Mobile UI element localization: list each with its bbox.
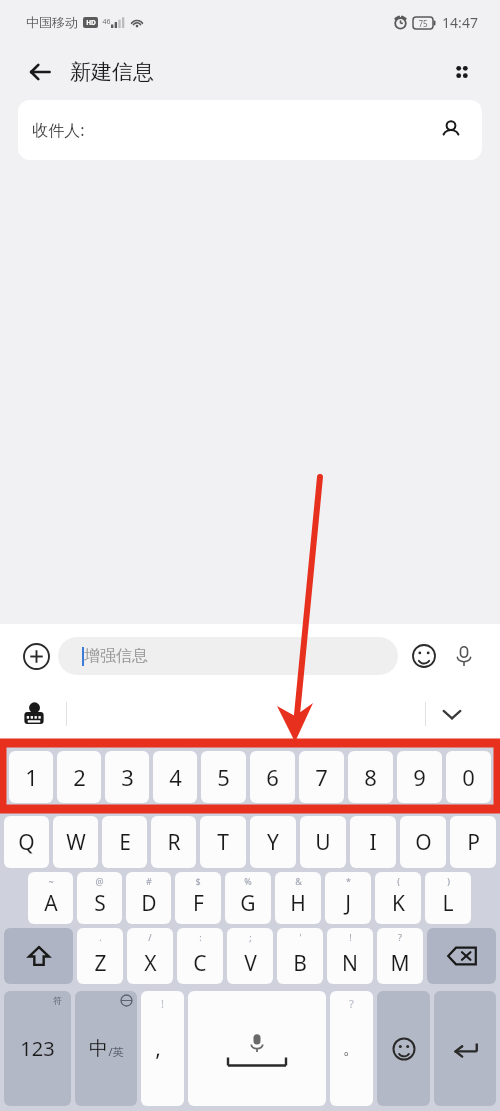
button[interactable]: * (325, 872, 371, 924)
staticText: I (369, 828, 377, 857)
button[interactable]: % (225, 872, 271, 924)
button[interactable]: Voice input (444, 636, 484, 676)
button[interactable]: ~ (28, 872, 73, 924)
button[interactable]: Add contact (434, 113, 468, 147)
button[interactable]: 7 (299, 751, 344, 803)
staticText: . (99, 931, 102, 943)
button[interactable]: & (275, 872, 321, 924)
staticText: R (167, 828, 181, 857)
button[interactable]: 8 (348, 751, 393, 803)
staticText: 新建信息 (70, 59, 154, 85)
button[interactable]: 中 (75, 991, 137, 1106)
button[interactable]: W (53, 816, 98, 868)
staticText: 46 (102, 17, 111, 27)
button[interactable]: @ (77, 872, 122, 924)
button[interactable]: ! (327, 928, 373, 984)
staticText: ! (161, 996, 164, 1011)
button[interactable]: . (77, 928, 123, 984)
staticText: G (240, 889, 256, 918)
staticText: 收件人: (32, 119, 85, 141)
staticText: % (244, 875, 252, 887)
staticText: 9 (413, 762, 426, 792)
staticText: ; (249, 931, 252, 943)
staticText: P (467, 828, 480, 857)
button[interactable]: 9 (397, 751, 442, 803)
button[interactable]: Input method (12, 692, 56, 736)
staticText: $ (195, 875, 201, 887)
button[interactable]: I (350, 816, 396, 868)
button[interactable]: / (127, 928, 173, 984)
staticText: 75 (418, 18, 428, 29)
staticText: N (342, 949, 358, 978)
staticText: 增强信息 (84, 646, 148, 666)
button[interactable]: O (400, 816, 446, 868)
staticText: Z (94, 949, 107, 978)
staticText: ' (299, 931, 302, 943)
button[interactable]: Hide keyboard (430, 692, 474, 736)
staticText: ( (397, 875, 400, 887)
staticText: H (290, 889, 306, 918)
staticText: B (293, 949, 307, 978)
button[interactable]: ! (141, 991, 184, 1106)
staticText: F (193, 889, 204, 918)
button[interactable]: 2 (57, 751, 101, 803)
staticText: 7 (315, 762, 328, 792)
button[interactable]: E (102, 816, 147, 868)
staticText: 中国移动 (26, 14, 78, 30)
button[interactable]: # (126, 872, 171, 924)
button[interactable]: ? (330, 991, 373, 1106)
staticText: A (44, 889, 58, 918)
staticText: J (345, 889, 351, 918)
staticText: T (217, 828, 229, 857)
staticText: # (146, 875, 152, 887)
staticText: E (119, 828, 131, 857)
staticText: 14:47 (442, 13, 478, 32)
button[interactable]: 3 (105, 751, 149, 803)
button[interactable]: 收件人: (18, 100, 482, 160)
staticText: * (346, 875, 351, 887)
staticText: Y (267, 828, 279, 857)
staticText: / (148, 931, 152, 943)
button[interactable]: Y (250, 816, 296, 868)
button[interactable]: T (200, 816, 246, 868)
button[interactable]: Emoji keyboard (377, 991, 430, 1106)
button[interactable]: Emoji (404, 636, 444, 676)
button[interactable]: Space (188, 991, 326, 1106)
staticText: : (199, 931, 202, 943)
button[interactable]: ? (377, 928, 423, 984)
button[interactable]: R (151, 816, 196, 868)
button[interactable]: ( (375, 872, 421, 924)
button[interactable]: Add attachment (14, 634, 58, 678)
staticText: 6 (266, 762, 279, 792)
staticText: 符 (53, 995, 62, 1006)
staticText: 中 (89, 1037, 108, 1061)
button[interactable]: 符 (4, 991, 71, 1106)
button[interactable]: 5 (201, 751, 246, 803)
staticText: 1 (25, 762, 38, 792)
button[interactable]: 6 (250, 751, 295, 803)
staticText: D (141, 889, 157, 918)
staticText: M (390, 949, 410, 978)
button[interactable]: 0 (446, 751, 491, 803)
staticText: @ (95, 875, 104, 887)
button[interactable]: More options (438, 48, 486, 96)
button[interactable]: Enter (434, 991, 496, 1106)
button[interactable]: 1 (9, 751, 53, 803)
button[interactable]: ' (277, 928, 323, 984)
button[interactable]: $ (175, 872, 221, 924)
button[interactable]: ; (227, 928, 273, 984)
button[interactable]: P (450, 816, 496, 868)
button[interactable]: Q (4, 816, 49, 868)
staticText: & (295, 875, 302, 887)
staticText: ? (398, 931, 402, 943)
button[interactable]: Shift (4, 928, 73, 984)
staticText: 3 (121, 762, 134, 792)
button[interactable]: 增强信息 (58, 637, 398, 675)
button[interactable]: : (177, 928, 223, 984)
button[interactable]: Backspace (427, 928, 496, 984)
staticText: Q (18, 828, 35, 857)
button[interactable]: ) (425, 872, 471, 924)
button[interactable]: U (300, 816, 346, 868)
button[interactable]: Back (16, 48, 64, 96)
button[interactable]: 4 (153, 751, 197, 803)
